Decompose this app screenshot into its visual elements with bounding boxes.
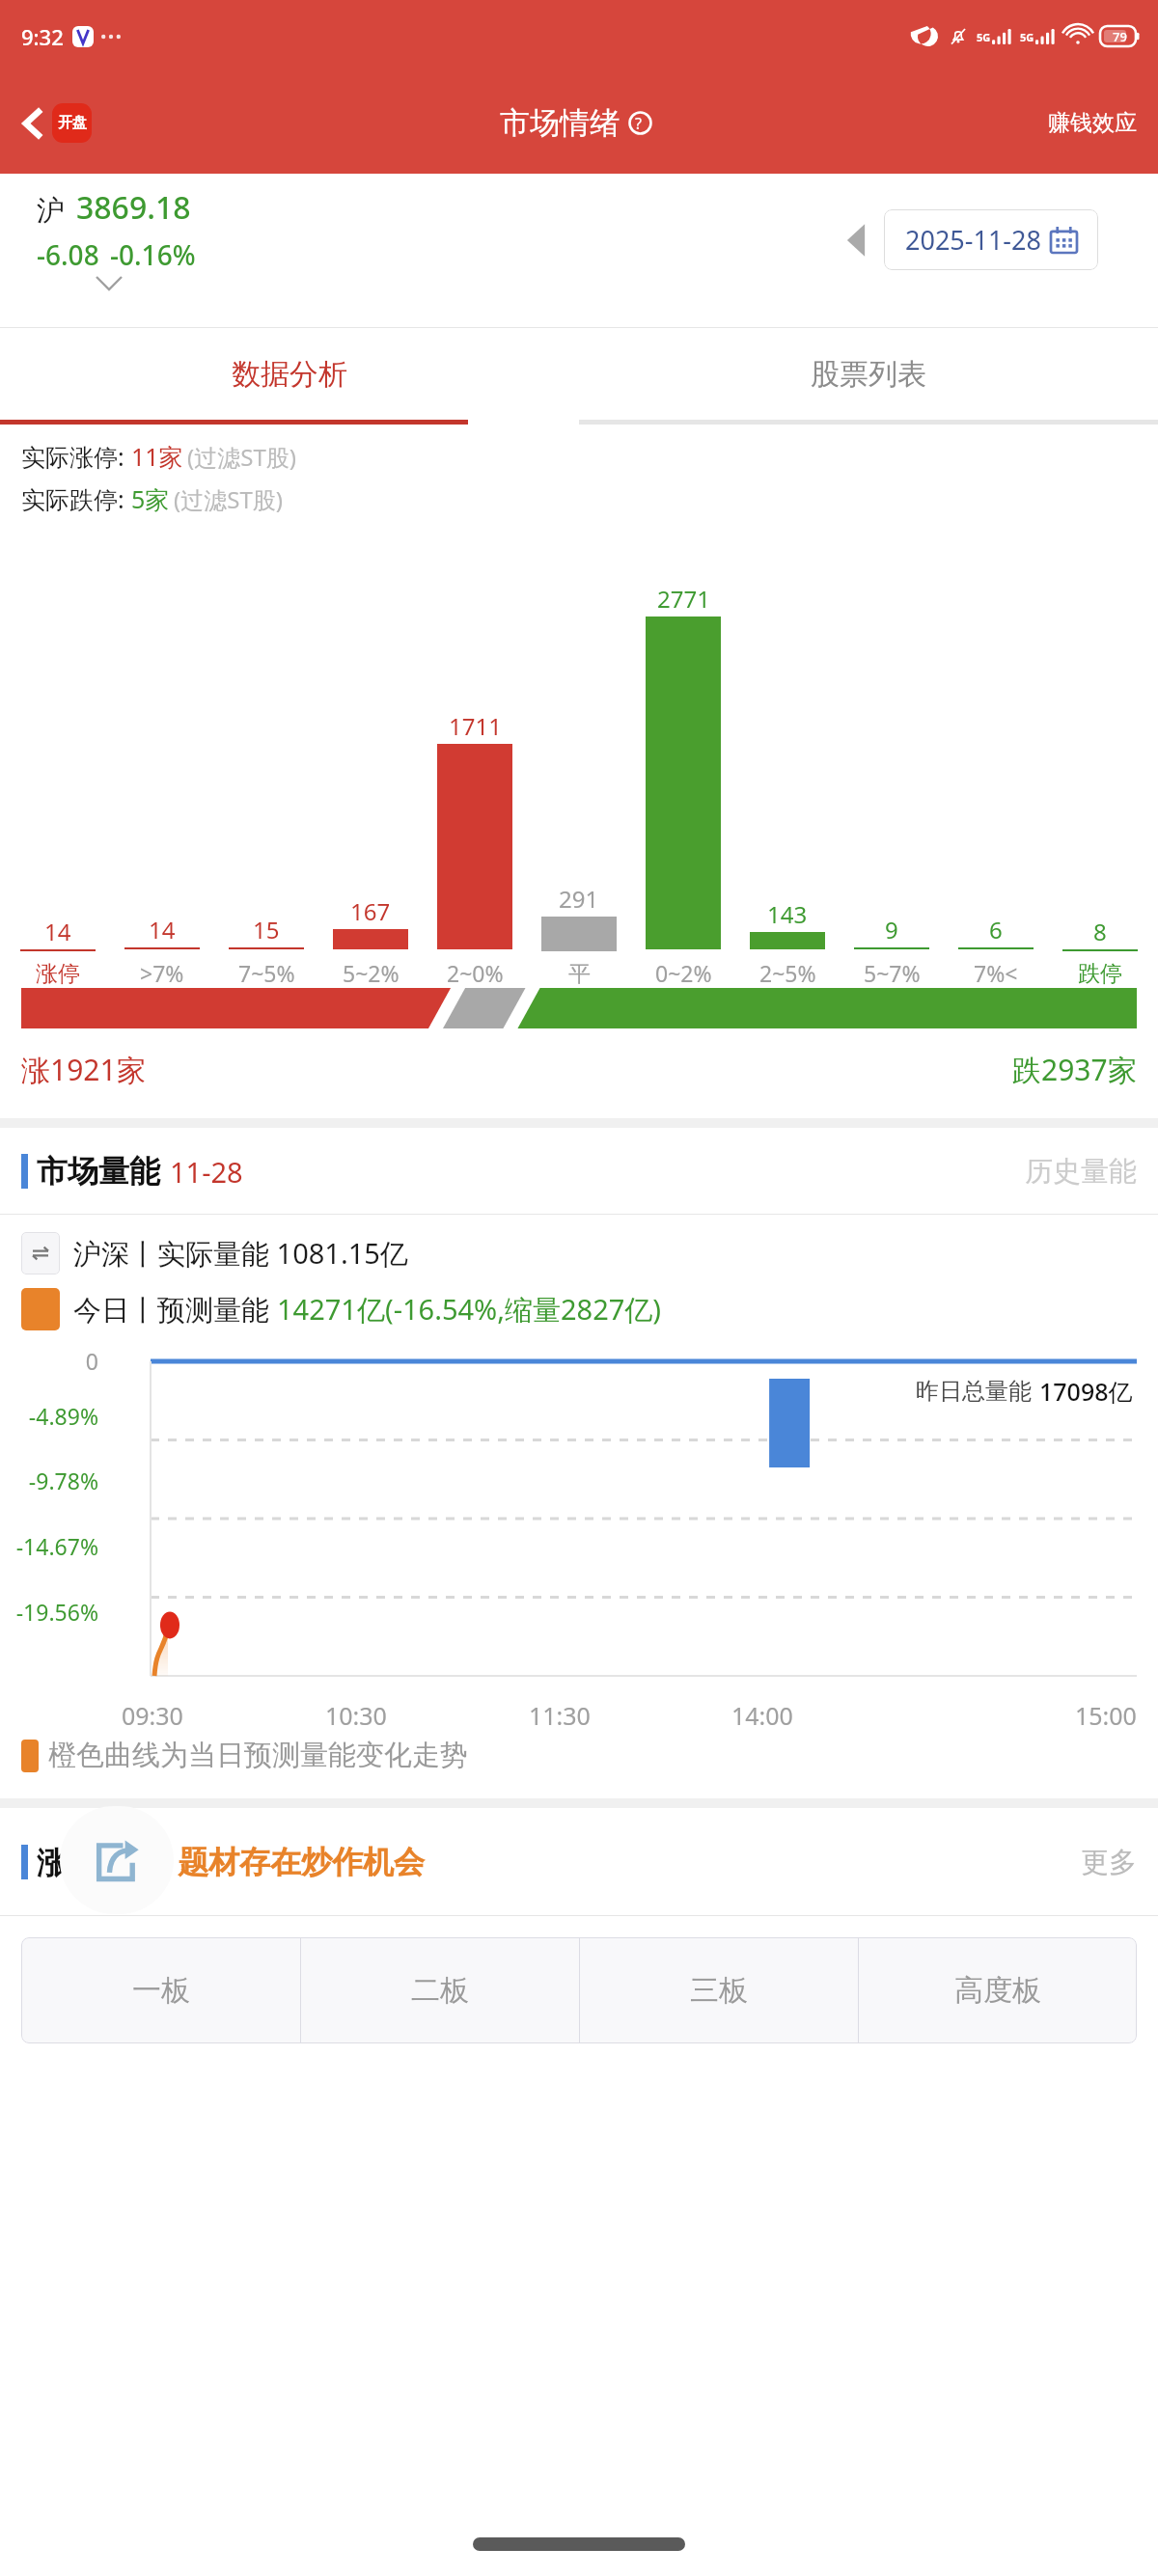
staticText: 2~0% [447,958,504,988]
staticText: 赚钱效应 [1048,109,1137,137]
staticText: 涨停 [36,960,80,988]
staticText: 5~2% [343,958,400,988]
button[interactable]: 2025-11-28 [884,209,1098,270]
staticText: 291 [559,883,599,915]
button[interactable]: 三板 [580,1937,858,2043]
staticText: 14271亿(-16.54%,缩量2827亿) [277,1290,662,1329]
button[interactable]: 股票列表 [579,328,1158,420]
staticText: ? [635,113,642,134]
staticText: 11-28 [170,1153,243,1191]
button[interactable]: 市场情绪 [500,104,659,142]
staticText: 一板 [132,1972,190,2009]
staticText: 市场量能 [37,1152,160,1191]
staticText: 沪深丨实际量能 1081.15亿 [73,1234,408,1273]
button[interactable]: 1711 [423,710,527,988]
staticText: 0 [85,1346,98,1376]
staticText: 5G [977,30,991,44]
staticText: 高度板 [954,1972,1041,2009]
staticText: -19.56% [15,1597,98,1627]
staticText: 11:30 [529,1699,591,1732]
staticText: 实际跌停: [21,482,131,515]
staticText: 143 [767,898,808,930]
staticText: -0.16% [110,236,196,273]
staticText: 开盘 [58,114,87,132]
staticText: 167 [350,895,391,927]
staticText: (过滤ST股) [187,441,296,473]
button[interactable]: 更多 [1060,1833,1158,1892]
button[interactable]: 143 [735,898,840,988]
button[interactable]: 14 [6,916,110,988]
staticText: (过滤ST股) [174,483,283,515]
staticText: 2771 [657,583,710,615]
staticText: 5~7% [864,958,921,988]
button[interactable]: Back 开盘 [14,97,99,149]
staticText: -6.08 [37,236,99,273]
staticText: 历史量能 [1025,1154,1137,1190]
staticText: -4.89% [28,1401,98,1431]
staticText: 2025-11-28 [905,222,1041,258]
button[interactable]: Share [60,1806,174,1914]
staticText: 实际涨停: [21,440,131,473]
button[interactable]: 赚钱效应 [1034,99,1150,147]
staticText: 6 [989,914,1003,945]
staticText: 15 [253,914,280,945]
staticText: 跌停 [1078,960,1122,988]
button[interactable]: 高度板 [859,1937,1137,2043]
staticText: 更多 [1081,1845,1137,1880]
staticText: 平 [568,960,591,988]
staticText: 14:00 [731,1699,793,1732]
staticText: 今日丨预测量能 [73,1290,277,1329]
staticText: 昨日总量能 [916,1377,1032,1406]
staticText: 数据分析 [232,356,347,393]
staticText: 0~2% [655,958,712,988]
staticText: 14 [149,914,176,945]
staticText: 橙色曲线为当日预测量能变化走势 [48,1738,468,1773]
staticText: 5G [1020,30,1034,44]
button[interactable]: 二板 [301,1937,579,2043]
staticText: 10:30 [325,1699,387,1732]
button[interactable]: 2771 [631,583,735,988]
staticText: 17098亿 [1039,1375,1133,1408]
staticText: 7%< [974,958,1018,988]
button[interactable]: 9 [840,914,944,988]
staticText: -9.78% [28,1466,98,1495]
button[interactable]: 6 [944,914,1048,988]
staticText: 7~5% [238,958,295,988]
button[interactable]: 15 [214,914,318,988]
button[interactable]: 数据分析 [0,328,579,420]
staticText: 沪 [37,193,65,229]
button[interactable]: 一板 [21,1937,300,2043]
button[interactable]: Previous day [843,220,868,260]
staticText: 1711 [449,710,502,742]
staticText: -14.67% [15,1531,98,1561]
staticText: 三板 [690,1972,748,2009]
button[interactable]: 291 [527,883,631,988]
button[interactable]: 167 [318,895,423,988]
staticText: 14 [44,916,71,947]
staticText: 跌2937家 [1012,1050,1137,1089]
staticText: 二板 [411,1972,469,2009]
staticText: 09:30 [122,1699,183,1732]
button[interactable]: 8 [1048,916,1152,988]
staticText: 11家 [131,440,183,473]
staticText: 79 [1113,28,1127,45]
staticText: 市场情绪 [500,104,620,142]
staticText: 2~5% [759,958,816,988]
staticText: 涨停表现: [37,1841,178,1883]
staticText: 8 [1093,916,1107,947]
staticText: 题材存在炒作机会 [178,1843,425,1881]
staticText: 股票列表 [811,356,926,393]
button[interactable]: 历史量能 [1004,1142,1158,1201]
staticText: 15:00 [1075,1699,1137,1732]
staticText: 5家 [131,482,170,515]
staticText: 3869.18 [76,186,191,229]
button[interactable]: 14 [110,914,214,988]
staticText: 9 [885,914,898,945]
staticText: 涨1921家 [21,1050,146,1089]
staticText: >7% [140,958,184,988]
staticText: 9:32 [21,22,64,51]
